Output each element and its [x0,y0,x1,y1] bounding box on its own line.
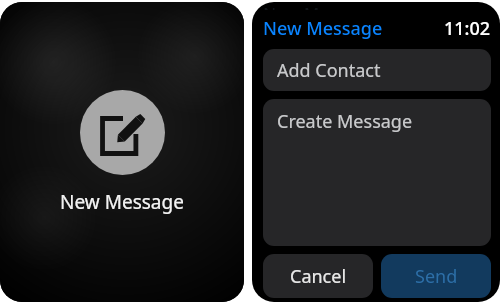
button[interactable]: Cancel [263,254,373,298]
staticText: Add Contact [277,58,381,83]
staticText: New Message [263,16,383,41]
button[interactable]: Add Contact [263,49,491,91]
button[interactable]: Send [381,254,491,298]
button[interactable]: New Message [80,90,165,175]
staticText: New Message [263,2,376,10]
staticText: Cancel [290,264,347,289]
staticText: Create Message [277,109,413,134]
staticText: Send [415,264,458,289]
staticText: New Message [60,189,184,215]
button[interactable]: Create Message [263,99,491,246]
staticText: 11:02 [444,16,491,41]
